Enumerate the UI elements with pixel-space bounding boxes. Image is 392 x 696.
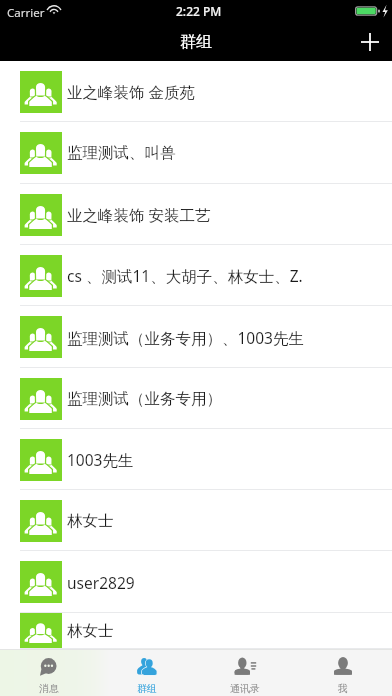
staticText: 林女士 (67, 621, 114, 641)
button[interactable]: user2829 (0, 551, 392, 613)
staticText: 林女士 (67, 511, 114, 531)
button[interactable]: 我 (294, 649, 392, 696)
button[interactable]: 通讯录 (196, 649, 294, 696)
staticText: 1003先生 (67, 449, 134, 470)
button[interactable]: 林女士 (0, 613, 392, 649)
staticText: 监理测试、叫兽 (67, 143, 176, 163)
staticText: 监理测试（业务专用）、1003先生 (67, 327, 304, 348)
button[interactable]: 群组 (98, 649, 196, 696)
staticText: cs 、测试11、大胡子、林女士、Z. (67, 265, 303, 286)
button[interactable]: 监理测试（业务专用）、1003先生 (0, 306, 392, 368)
staticText: 消息 (39, 682, 59, 695)
staticText: 群组 (180, 31, 213, 52)
staticText: 通讯录 (230, 682, 260, 695)
staticText: 业之峰装饰 金质苑 (67, 81, 196, 102)
button[interactable]: 监理测试、叫兽 (0, 122, 392, 184)
button[interactable]: 林女士 (0, 490, 392, 551)
staticText: 业之峰装饰 安装工艺 (67, 204, 211, 225)
button[interactable]: Add (348, 22, 392, 61)
button[interactable]: 业之峰装饰 金质苑 (0, 61, 392, 122)
button[interactable]: 消息 (0, 649, 98, 696)
staticText: user2829 (67, 572, 135, 593)
staticText: Carrier (7, 5, 45, 21)
button[interactable]: 业之峰装饰 安装工艺 (0, 184, 392, 245)
staticText: 群组 (137, 682, 157, 695)
staticText: 2:22 PM (176, 3, 222, 19)
staticText: 我 (338, 682, 348, 695)
button[interactable]: cs 、测试11、大胡子、林女士、Z. (0, 245, 392, 306)
button[interactable]: 监理测试（业务专用） (0, 368, 392, 429)
button[interactable]: 1003先生 (0, 429, 392, 490)
staticText: 监理测试（业务专用） (67, 389, 222, 409)
